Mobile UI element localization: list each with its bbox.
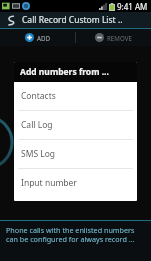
staticText: Call Record Custom List .. (22, 14, 123, 26)
button[interactable]: SMS Log (14, 140, 137, 168)
staticText: Phone calls with the enlisted numbers ca… (6, 225, 147, 245)
staticText: 9:41 AM (117, 1, 148, 12)
staticText: Contacts (21, 90, 56, 102)
staticText: SMS Log (21, 148, 56, 160)
staticText: Add numbers from ... (20, 66, 109, 78)
button[interactable]: Contacts (14, 82, 137, 110)
staticText: ADD (37, 34, 50, 42)
button[interactable]: Input number (14, 169, 137, 197)
button[interactable]: App icon (5, 14, 18, 27)
button[interactable]: Call Log (14, 111, 137, 139)
button[interactable]: ADD (0, 29, 75, 46)
staticText: REMOVE (107, 34, 132, 42)
button[interactable]: REMOVE (76, 29, 151, 46)
staticText: Call Log (21, 119, 53, 131)
staticText: Input number (21, 177, 77, 189)
